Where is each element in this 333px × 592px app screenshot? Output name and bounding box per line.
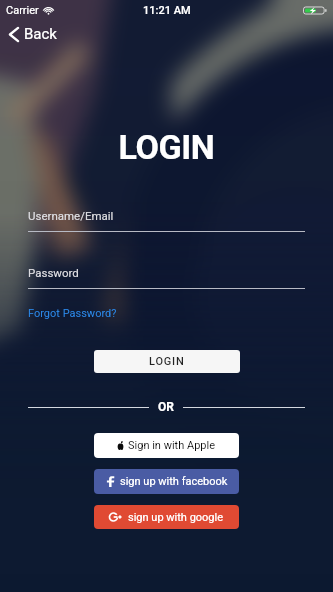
- button[interactable]: Forgot Password?: [28, 307, 117, 320]
- staticText: Carrier: [6, 4, 39, 17]
- button[interactable]: sign up with facebook: [94, 469, 239, 494]
- staticText: Forgot Password?: [28, 307, 117, 320]
- button[interactable]: sign up with google: [94, 505, 239, 529]
- staticText: OR: [158, 400, 174, 414]
- button[interactable]: Back: [8, 22, 57, 46]
- staticText: 11:21 AM: [143, 4, 191, 17]
- staticText: LOGIN: [0, 127, 333, 167]
- staticText: Sign in with Apple: [128, 439, 216, 452]
- staticText: Password: [28, 266, 79, 279]
- staticText: sign up with google: [128, 511, 224, 524]
- staticText: sign up with facebook: [120, 475, 228, 488]
- button[interactable]: Sign in with Apple: [94, 433, 239, 458]
- button[interactable]: LOGIN: [94, 350, 240, 373]
- staticText: Username/Email: [28, 209, 114, 222]
- staticText: LOGIN: [149, 355, 185, 368]
- staticText: Back: [24, 25, 57, 43]
